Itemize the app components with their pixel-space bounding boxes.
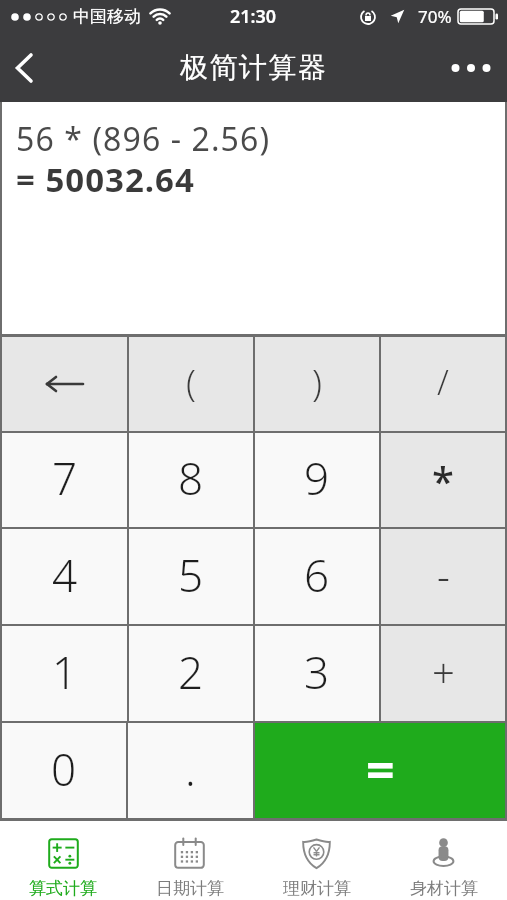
staticText: 极简计算器 xyxy=(180,50,328,85)
button[interactable]: 3 xyxy=(255,626,379,721)
button[interactable]: 0 xyxy=(2,723,126,818)
button[interactable]: = xyxy=(255,723,505,818)
button[interactable]: 身材计算 xyxy=(380,821,507,900)
staticText: 21:30 xyxy=(230,4,277,29)
button[interactable]: - xyxy=(381,529,505,624)
button[interactable] xyxy=(2,337,127,431)
staticText: 理财计算 xyxy=(283,878,351,899)
staticText: 0 xyxy=(51,739,77,799)
staticText: 2 xyxy=(178,642,204,702)
button[interactable]: 1 xyxy=(2,626,127,721)
button[interactable]: * xyxy=(381,433,505,527)
staticText: 9 xyxy=(304,448,330,508)
staticText: - xyxy=(437,548,450,602)
staticText: = xyxy=(366,735,395,803)
button[interactable]: 7 xyxy=(2,433,127,527)
button[interactable] xyxy=(448,50,494,86)
button[interactable]: . xyxy=(128,723,253,818)
button[interactable]: 4 xyxy=(2,529,127,624)
staticText: 算式计算 xyxy=(29,878,97,899)
staticText: 5 xyxy=(178,545,204,605)
staticText: 3 xyxy=(304,642,330,702)
staticText: 7 xyxy=(52,448,78,508)
button[interactable]: 理财计算 xyxy=(253,821,380,900)
staticText: . xyxy=(185,739,196,799)
staticText: = 50032.64 xyxy=(16,157,195,202)
staticText: 1 xyxy=(52,642,78,702)
button[interactable]: 8 xyxy=(129,433,253,527)
button[interactable]: 算式计算 xyxy=(0,821,126,900)
button[interactable]: 日期计算 xyxy=(126,821,253,900)
staticText: ( xyxy=(186,358,196,407)
staticText: 中国移动 xyxy=(73,6,141,27)
button[interactable]: ) xyxy=(255,337,379,431)
button[interactable]: 2 xyxy=(129,626,253,721)
staticText: 70% xyxy=(418,5,452,28)
button[interactable] xyxy=(5,50,41,86)
staticText: 身材计算 xyxy=(410,878,478,899)
staticText: + xyxy=(432,645,455,699)
staticText: 日期计算 xyxy=(156,878,224,899)
staticText: / xyxy=(437,359,449,405)
button[interactable]: 5 xyxy=(129,529,253,624)
button[interactable]: / xyxy=(381,337,505,431)
staticText: ) xyxy=(312,358,322,407)
staticText: 56 * (896 - 2.56) xyxy=(16,117,271,161)
staticText: 8 xyxy=(178,448,204,508)
button[interactable]: 6 xyxy=(255,529,379,624)
button[interactable]: 9 xyxy=(255,433,379,527)
staticText: 6 xyxy=(304,545,330,605)
staticText: 4 xyxy=(52,545,78,605)
staticText: * xyxy=(432,453,454,507)
button[interactable]: + xyxy=(381,626,505,721)
button[interactable]: ( xyxy=(129,337,253,431)
